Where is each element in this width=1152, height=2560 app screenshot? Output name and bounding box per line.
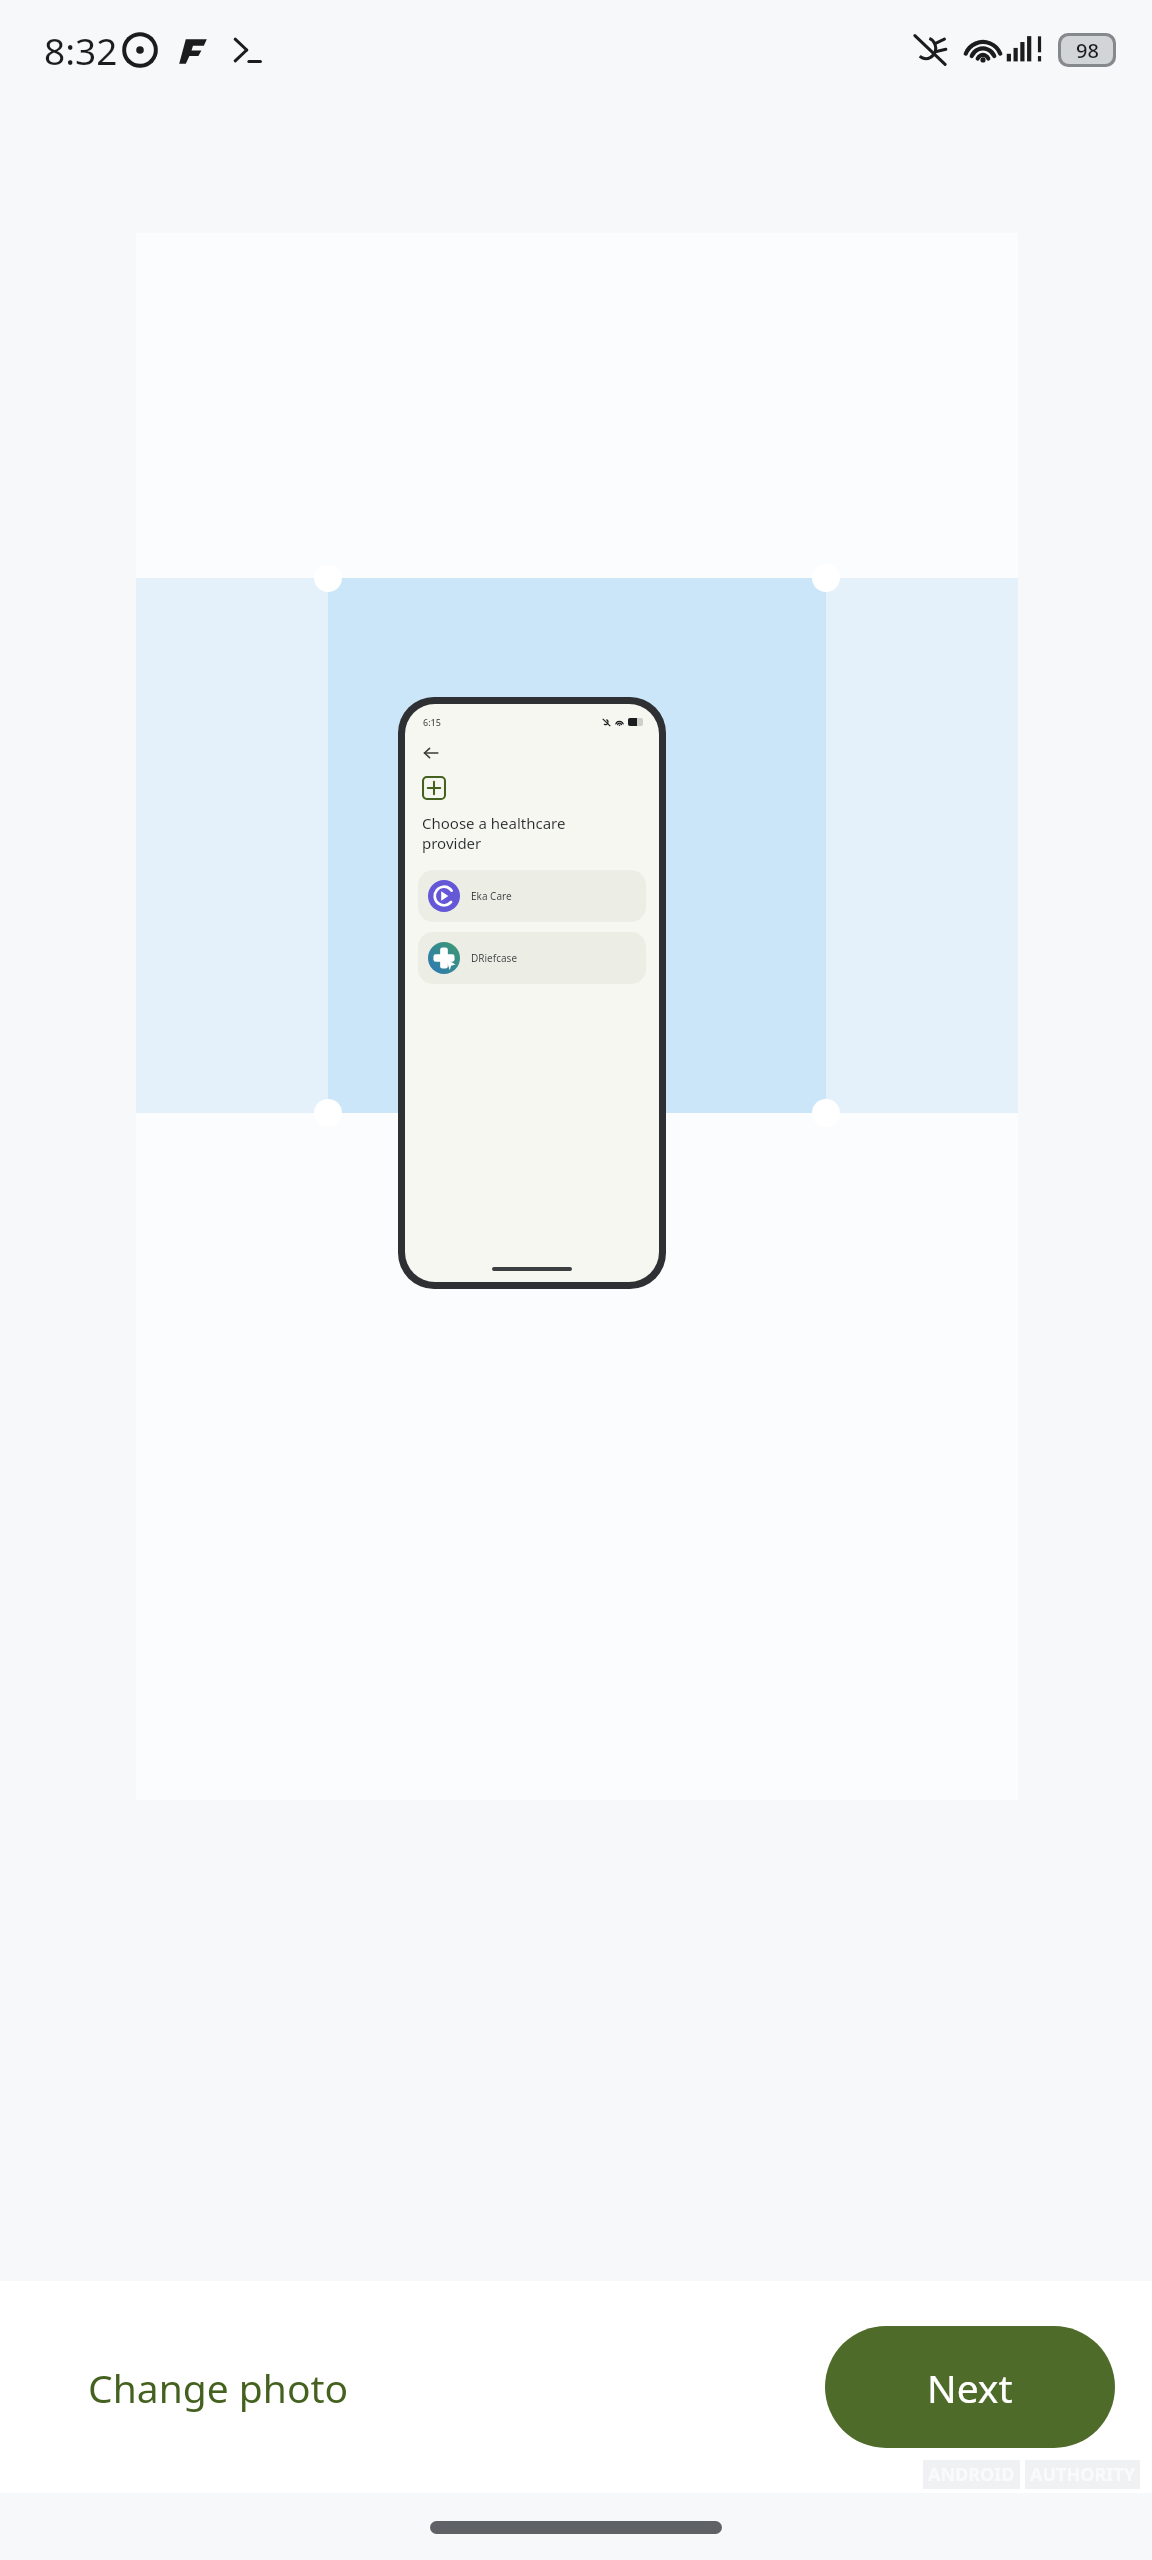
staticText: AUTHORITY <box>1030 2462 1135 2487</box>
staticText: Eka Care <box>471 889 512 903</box>
staticText: 6:15 <box>423 716 441 728</box>
staticText: DRiefcase <box>471 951 518 965</box>
button[interactable]: Resize crop <box>812 1099 840 1127</box>
button[interactable]: Resize crop <box>812 564 840 592</box>
button[interactable]: DRiefcase <box>418 932 646 984</box>
button[interactable]: Next <box>825 2326 1115 2448</box>
staticText: Choose a healthcare provider <box>422 813 566 853</box>
staticText: Next <box>927 2361 1013 2414</box>
staticText: 98 <box>1076 37 1099 64</box>
button[interactable]: Change photo <box>40 2339 397 2436</box>
button[interactable]: Eka Care <box>418 870 646 922</box>
staticText: ANDROID <box>928 2462 1015 2487</box>
button[interactable]: Resize crop <box>314 1099 342 1127</box>
button[interactable]: Back <box>422 744 440 762</box>
staticText: Change photo <box>88 2361 349 2414</box>
button[interactable]: Resize crop <box>314 564 342 592</box>
staticText: 8:32 <box>44 25 118 75</box>
